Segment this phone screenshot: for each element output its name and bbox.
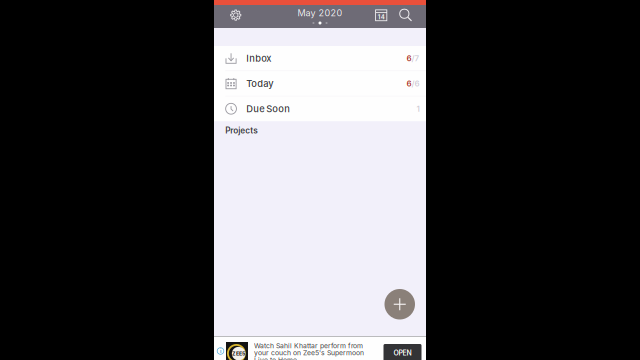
button[interactable]: Search — [393, 4, 418, 27]
staticText: Due Soon — [246, 103, 290, 114]
staticText: /7 — [411, 53, 419, 63]
staticText: 6 — [406, 53, 411, 63]
button[interactable]: Calendar — [369, 4, 393, 27]
staticText: May 2020 — [297, 7, 342, 18]
button[interactable]: i — [214, 336, 426, 360]
staticText: 1 — [416, 104, 419, 114]
button[interactable]: Inbox — [214, 46, 426, 71]
staticText: OPEN — [393, 349, 411, 357]
staticText: Live to Home — [254, 356, 297, 360]
button[interactable]: Today — [214, 71, 426, 96]
staticText: your couch on Zee5's Supermoon — [254, 349, 364, 357]
button[interactable]: Add task — [384, 289, 415, 319]
staticText: Projects — [225, 126, 258, 136]
staticText: Inbox — [246, 53, 271, 64]
button[interactable]: Due Soon — [214, 96, 426, 121]
staticText: /6 — [411, 79, 419, 88]
staticText: i — [220, 348, 221, 354]
staticText: 14 — [378, 13, 385, 21]
staticText: ZEE5 — [232, 350, 245, 357]
staticText: Today — [246, 78, 273, 89]
button[interactable]: Settings — [223, 4, 248, 27]
staticText: 6 — [406, 79, 411, 88]
staticText: Watch Sahil Khattar perform from — [254, 342, 363, 350]
